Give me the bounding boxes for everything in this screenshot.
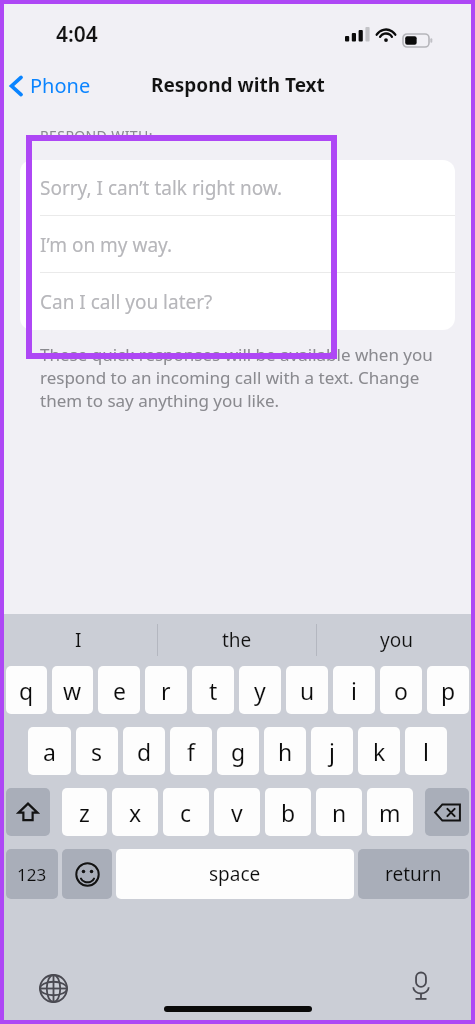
staticText: you (380, 627, 413, 653)
staticText: v (231, 797, 243, 828)
staticText: e (113, 675, 126, 706)
staticText: w (63, 675, 82, 706)
staticText: f (187, 736, 195, 767)
staticText: return (385, 861, 442, 887)
button[interactable]: 123 (6, 849, 58, 899)
staticText: RESPOND WITH: (40, 126, 153, 145)
staticText: I (75, 627, 82, 653)
staticText: b (281, 797, 296, 828)
staticText: j (329, 736, 335, 767)
button[interactable]: h (264, 727, 306, 775)
button[interactable]: w (52, 666, 93, 714)
staticText: space (209, 861, 261, 887)
staticText: y (254, 675, 266, 706)
staticText: u (300, 675, 315, 706)
staticText: l (423, 736, 429, 767)
button[interactable]: t (192, 666, 234, 714)
button[interactable]: i (333, 666, 375, 714)
staticText: h (278, 736, 293, 767)
staticText: g (231, 736, 246, 767)
button[interactable]: g (217, 727, 259, 775)
staticText: o (394, 675, 408, 706)
button[interactable]: Change keyboard (34, 969, 72, 1007)
staticText: Can I call you later? (40, 289, 213, 315)
button[interactable]: Sorry, I can’t talk right now. (20, 160, 455, 216)
button[interactable]: Delete (425, 788, 469, 836)
button[interactable]: o (380, 666, 422, 714)
button[interactable]: Dictate (402, 967, 440, 1005)
button[interactable]: I (0, 614, 157, 666)
button[interactable]: x (112, 788, 158, 836)
staticText: r (161, 675, 171, 706)
button[interactable]: c (163, 788, 209, 836)
button[interactable]: n (316, 788, 362, 836)
button[interactable]: q (6, 666, 47, 714)
staticText: p (441, 675, 456, 706)
button[interactable]: Can I call you later? (20, 273, 455, 330)
button[interactable]: space (116, 849, 354, 899)
button[interactable]: the (158, 614, 316, 666)
staticText: Respond with Text (151, 72, 325, 98)
button[interactable]: y (239, 666, 281, 714)
staticText: t (209, 675, 218, 706)
button[interactable]: Shift (6, 788, 50, 836)
button[interactable]: u (286, 666, 328, 714)
staticText: k (373, 736, 386, 767)
staticText: c (180, 797, 192, 828)
button[interactable]: v (214, 788, 260, 836)
staticText: a (43, 736, 56, 767)
staticText: Phone (30, 72, 91, 99)
button[interactable]: f (170, 727, 212, 775)
staticText: the (222, 627, 252, 653)
staticText: s (91, 736, 103, 767)
staticText: z (79, 797, 90, 828)
staticText: Sorry, I can’t talk right now. (40, 175, 283, 201)
button[interactable]: d (123, 727, 165, 775)
button[interactable]: a (28, 727, 71, 775)
button[interactable]: l (405, 727, 447, 775)
staticText: i (351, 675, 357, 706)
staticText: m (379, 797, 401, 828)
button[interactable]: you (317, 614, 475, 666)
button[interactable]: Phone (0, 67, 103, 104)
button[interactable]: Emoji keyboard (62, 849, 112, 899)
button[interactable]: return (358, 849, 469, 899)
staticText: n (332, 797, 347, 828)
staticText: These quick responses will be available … (40, 343, 447, 412)
button[interactable]: p (427, 666, 469, 714)
button[interactable]: e (98, 666, 140, 714)
staticText: d (137, 736, 152, 767)
button[interactable]: m (367, 788, 413, 836)
button[interactable]: j (311, 727, 353, 775)
button[interactable]: z (62, 788, 107, 836)
staticText: 123 (17, 863, 47, 886)
button[interactable]: r (145, 666, 187, 714)
staticText: x (129, 797, 142, 828)
button[interactable]: s (76, 727, 118, 775)
staticText: 4:04 (56, 20, 98, 49)
button[interactable]: k (358, 727, 400, 775)
staticText: I’m on my way. (40, 232, 173, 258)
button[interactable]: b (265, 788, 311, 836)
button[interactable]: I’m on my way. (20, 216, 455, 273)
staticText: q (19, 675, 34, 706)
